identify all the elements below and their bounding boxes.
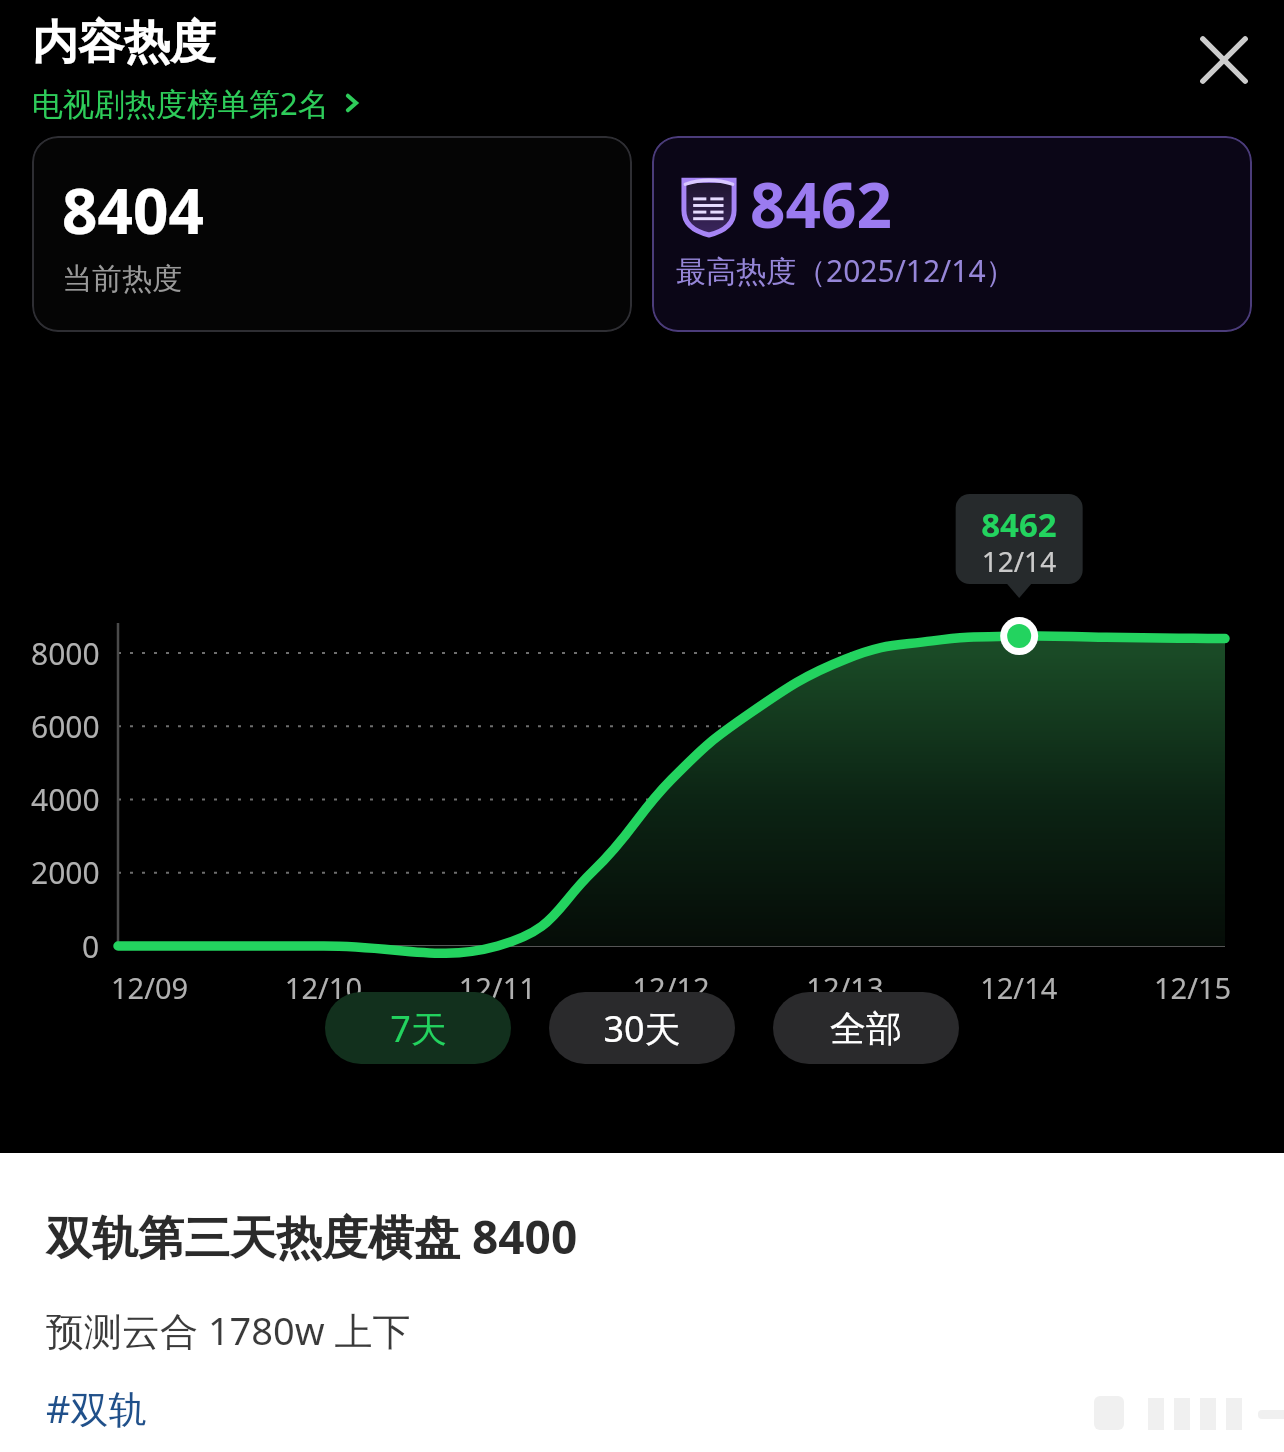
- staticText: 内容热度: [32, 14, 216, 72]
- staticText: 8462: [750, 162, 892, 246]
- staticText: 7天: [390, 1004, 447, 1053]
- staticText: 双轨第三天热度横盘 8400: [46, 1205, 578, 1268]
- staticText: 8404: [62, 168, 204, 252]
- button[interactable]: 电视剧热度榜单第2名: [32, 82, 365, 124]
- staticText: 30天: [603, 1004, 681, 1053]
- button[interactable]: #双轨: [46, 1382, 147, 1434]
- button[interactable]: Close: [1192, 28, 1256, 92]
- button[interactable]: 7天: [325, 992, 511, 1064]
- staticText: 最高热度（2025/12/14）: [676, 250, 1016, 291]
- button[interactable]: 全部: [773, 992, 959, 1064]
- button[interactable]: 8462: [652, 136, 1252, 332]
- staticText: 预测云合 1780w 上下: [46, 1304, 411, 1356]
- staticText: 当前热度: [62, 260, 182, 298]
- button[interactable]: 30天: [549, 992, 735, 1064]
- button[interactable]: 8404: [32, 136, 632, 332]
- staticText: 电视剧热度榜单第2名: [32, 82, 329, 124]
- staticText: 全部: [830, 1006, 902, 1051]
